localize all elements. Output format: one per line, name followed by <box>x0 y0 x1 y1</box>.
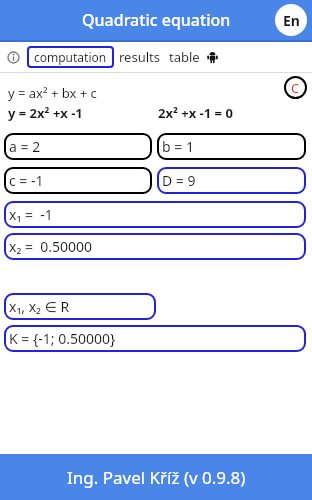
button[interactable]: En <box>275 4 307 36</box>
button[interactable]: x₁, x₂ ∈ R <box>4 293 156 320</box>
button[interactable]: c = -1 <box>4 167 152 194</box>
staticText: y = ax² + bx + c <box>8 84 97 102</box>
staticText: x₂ = 0.50000 <box>9 237 93 256</box>
button[interactable]: K = {-1; 0.50000} <box>4 325 306 352</box>
button[interactable]: results <box>116 45 163 69</box>
staticText: b = 1 <box>162 137 194 156</box>
button[interactable]: table <box>166 45 203 69</box>
staticText: x₁ = -1 <box>9 205 53 224</box>
button[interactable]: a = 2 <box>4 133 152 160</box>
staticText: D = 9 <box>162 171 196 190</box>
staticText: x₁, x₂ ∈ R <box>9 297 70 316</box>
button[interactable] <box>206 51 219 64</box>
staticText: a = 2 <box>9 137 41 156</box>
staticText: 2x² +x -1 = 0 <box>158 104 233 122</box>
staticText: Ing. Pavel Kříž (v 0.9.8) <box>67 466 246 489</box>
button[interactable]: D = 9 <box>157 167 306 194</box>
button[interactable]: computation <box>27 46 114 68</box>
staticText: computation <box>34 49 107 65</box>
button[interactable]: Ing. Pavel Kříž (v 0.9.8) <box>0 454 312 500</box>
staticText: y = 2x² +x -1 <box>8 104 83 122</box>
button[interactable] <box>7 51 20 64</box>
staticText: C <box>291 79 300 97</box>
staticText: En <box>283 11 300 30</box>
staticText: table <box>169 48 200 66</box>
button[interactable]: x₂ = 0.50000 <box>4 233 306 260</box>
button[interactable]: x₁ = -1 <box>4 201 306 228</box>
button[interactable]: b = 1 <box>157 133 306 160</box>
button[interactable]: C <box>284 76 307 99</box>
staticText: K = {-1; 0.50000} <box>9 329 116 348</box>
staticText: results <box>119 48 160 66</box>
staticText: Quadratic equation <box>82 9 231 31</box>
staticText: c = -1 <box>9 171 44 190</box>
